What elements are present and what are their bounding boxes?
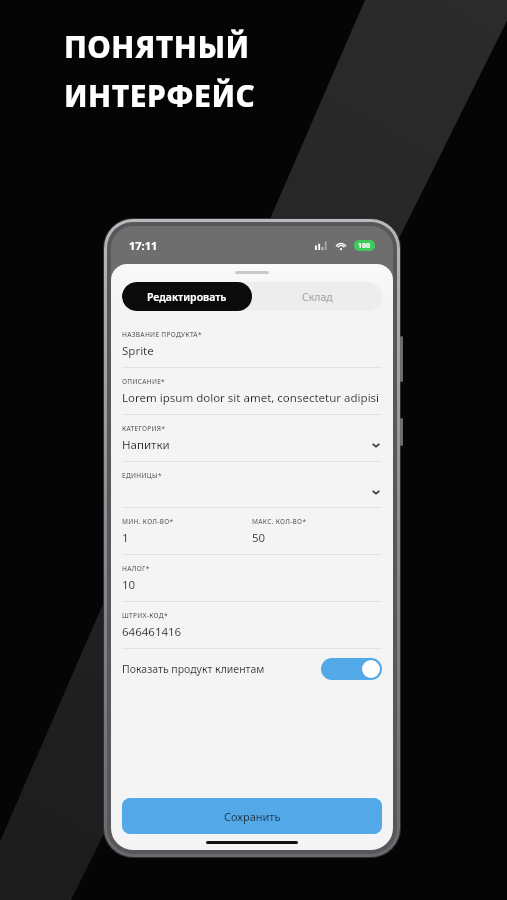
other: Открыть список (370, 439, 382, 451)
staticText: Сохранить (224, 809, 281, 824)
staticText: 100 (358, 241, 371, 251)
staticText: ОПИСАНИЕ* (122, 377, 165, 386)
staticText: МИН. КОЛ-ВО* (122, 517, 174, 526)
button[interactable]: НАЛОГ* (122, 555, 382, 602)
button[interactable]: ОПИСАНИЕ* (122, 368, 382, 415)
button[interactable]: Показать продукт клиентам (122, 649, 382, 689)
staticText: 1 (122, 530, 129, 546)
button[interactable]: Редактировать (122, 282, 252, 311)
staticText: МАКС. КОЛ-ВО* (252, 517, 307, 526)
button[interactable]: ШТРИХ-КОД* (122, 602, 382, 649)
button[interactable]: Сохранить (122, 798, 382, 834)
staticText: Sprite (122, 343, 154, 359)
staticText: Показать продукт клиентам (122, 662, 265, 676)
staticText: ИНТЕРФЕЙС (64, 75, 256, 116)
staticText: Редактировать (147, 290, 227, 304)
other: Открыть список (370, 486, 382, 498)
staticText: КАТЕГОРИЯ* (122, 424, 166, 433)
staticText: Склад (302, 290, 333, 304)
staticText: Lorem ipsum dolor sit amet, consectetur … (122, 390, 380, 406)
staticText: ПОНЯТНЫЙ (64, 26, 250, 67)
staticText: 10 (122, 577, 136, 593)
staticText: ЕДИНИЦЫ* (122, 471, 162, 480)
button[interactable]: НАЗВАНИЕ ПРОДУКТА* (122, 321, 382, 368)
staticText: ШТРИХ-КОД* (122, 611, 168, 620)
button[interactable]: Склад (252, 282, 382, 311)
staticText: НАЗВАНИЕ ПРОДУКТА* (122, 330, 202, 339)
staticText: 50 (252, 530, 266, 546)
staticText: Напитки (122, 437, 170, 453)
staticText: 646461416 (122, 624, 182, 640)
button[interactable]: КАТЕГОРИЯ* (122, 415, 382, 462)
button[interactable]: ЕДИНИЦЫ* (122, 462, 382, 508)
staticText: 17:11 (129, 238, 158, 253)
staticText: НАЛОГ* (122, 564, 150, 573)
